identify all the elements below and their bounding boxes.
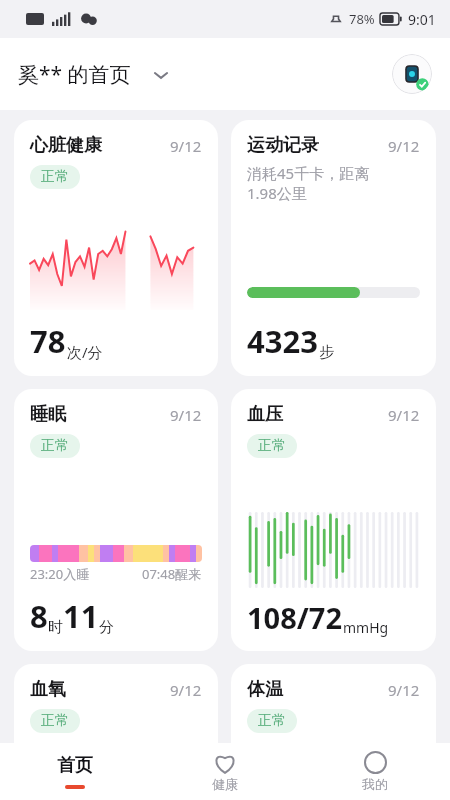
staticText: 消耗45千卡，距离 [247,163,370,183]
button[interactable]: 心脏健康 [14,120,218,376]
staticText: 睡眠 [30,403,66,426]
staticText: 健康 [212,776,238,792]
staticText: 4323 [247,320,318,362]
button[interactable]: 首页 [0,743,150,800]
staticText: 运动记录 [247,134,319,157]
button[interactable]: 睡眠 [14,389,218,651]
staticText: 正常 [258,437,286,455]
staticText: 9/12 [388,680,420,700]
staticText: 9/12 [170,136,202,156]
staticText: 9/12 [388,405,420,425]
staticText: 23:20入睡 [30,565,90,583]
staticText: 正常 [41,168,69,186]
staticText: 步 [319,343,334,362]
staticText: 血氧 [30,678,66,701]
button[interactable]: Health [150,743,300,800]
staticText: 108/72 [247,598,342,637]
staticText: 分 [99,618,114,637]
staticText: 07:48醒来 [142,565,202,583]
staticText: 9:01 [408,10,436,29]
button[interactable]: Mine [300,743,450,800]
staticText: 我的 [362,776,388,792]
staticText: 9/12 [170,680,202,700]
staticText: 血压 [247,403,283,426]
staticText: 9/12 [170,405,202,425]
button[interactable]: 运动记录 [231,120,436,376]
other: Health [212,752,238,774]
staticText: 78% [349,10,375,28]
staticText: 首页 [57,754,93,777]
button[interactable]: Device connected [392,54,432,94]
staticText: 78 [30,320,66,362]
staticText: 正常 [41,712,69,730]
staticText: 正常 [258,712,286,730]
staticText: 正常 [41,437,69,455]
staticText: 心脏健康 [30,134,102,157]
button[interactable]: 奚** 的首页 [18,60,169,89]
staticText: 体温 [247,678,283,701]
staticText: 1.98公里 [247,183,307,203]
staticText: 11 [63,595,99,637]
staticText: mmHg [343,618,389,637]
staticText: 次/分 [67,342,103,362]
staticText: 时 [48,618,63,637]
staticText: 9/12 [388,136,420,156]
other: Mine [364,751,387,774]
button[interactable]: 血氧 [14,664,218,784]
button[interactable]: 血压 [231,389,436,651]
staticText: 奚** 的首页 [18,60,131,89]
staticText: 8 [30,595,48,637]
button[interactable]: 体温 [231,664,436,784]
